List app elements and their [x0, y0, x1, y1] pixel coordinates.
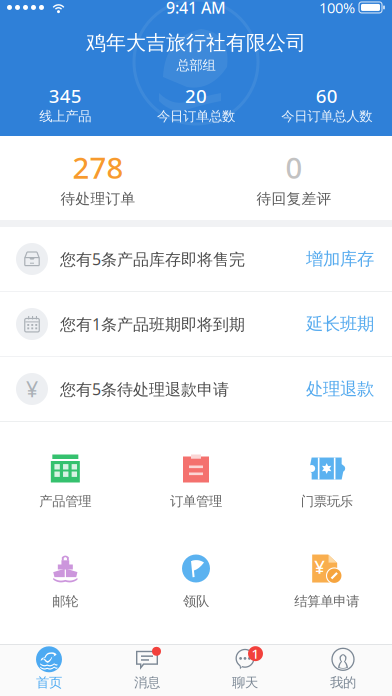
staticText: 延长班期 [306, 313, 374, 335]
staticText: 20 [185, 83, 207, 108]
staticText: 今日订单总人数 [281, 108, 372, 125]
staticText: 1 [251, 645, 259, 662]
button[interactable]: 278 [0, 136, 196, 220]
staticText: 我的 [330, 674, 356, 691]
button[interactable]: 首页 [0, 644, 98, 696]
button[interactable]: 订单管理 [131, 422, 261, 522]
button[interactable]: 您有5条产品库存即将售完 [0, 227, 392, 291]
staticText: 产品管理 [39, 493, 91, 509]
staticText: ¥ [26, 375, 38, 403]
staticText: 9:41 AM [166, 0, 226, 18]
button[interactable]: ¥ [261, 522, 392, 622]
staticText: 门票玩乐 [301, 493, 353, 509]
staticText: 增加库存 [306, 248, 374, 270]
staticText: 领队 [183, 593, 209, 609]
button[interactable]: 领队 [131, 522, 261, 622]
staticText: 首页 [36, 674, 62, 691]
staticText: ¥ [314, 554, 325, 579]
staticText: 邮轮 [52, 593, 78, 609]
button[interactable]: 产品管理 [0, 422, 131, 522]
staticText: 345 [49, 83, 82, 108]
button[interactable]: 邮轮 [0, 522, 131, 622]
staticText: 您有5条产品库存即将售完 [60, 248, 245, 270]
staticText: 处理退款 [306, 378, 374, 400]
staticText: 结算单申请 [294, 593, 359, 609]
staticText: 0 [285, 148, 302, 187]
staticText: 聊天 [232, 674, 258, 691]
staticText: 订单管理 [170, 493, 222, 509]
staticText: 消息 [134, 674, 160, 691]
staticText: 60 [316, 83, 338, 108]
staticText: 100% [319, 0, 355, 17]
staticText: 待处理订单 [60, 190, 135, 208]
button[interactable]: 门票玩乐 [261, 422, 392, 522]
staticText: 待回复差评 [256, 190, 331, 208]
staticText: 您有5条待处理退款申请 [60, 378, 229, 400]
staticText: 今日订单总数 [157, 108, 235, 125]
staticText: 鸡年大吉旅行社有限公司 [86, 30, 306, 55]
button[interactable]: ¥ [0, 357, 392, 421]
button[interactable]: 您有1条产品班期即将到期 [0, 292, 392, 356]
staticText: 278 [72, 148, 123, 187]
staticText: 总部组 [176, 57, 215, 73]
staticText: 线上产品 [39, 108, 91, 125]
button[interactable]: 我的 [294, 644, 392, 696]
button[interactable]: 0 [196, 136, 392, 220]
button[interactable]: 消息 [98, 644, 196, 696]
staticText: 您有1条产品班期即将到期 [60, 313, 245, 335]
button[interactable]: 1 [196, 644, 294, 696]
